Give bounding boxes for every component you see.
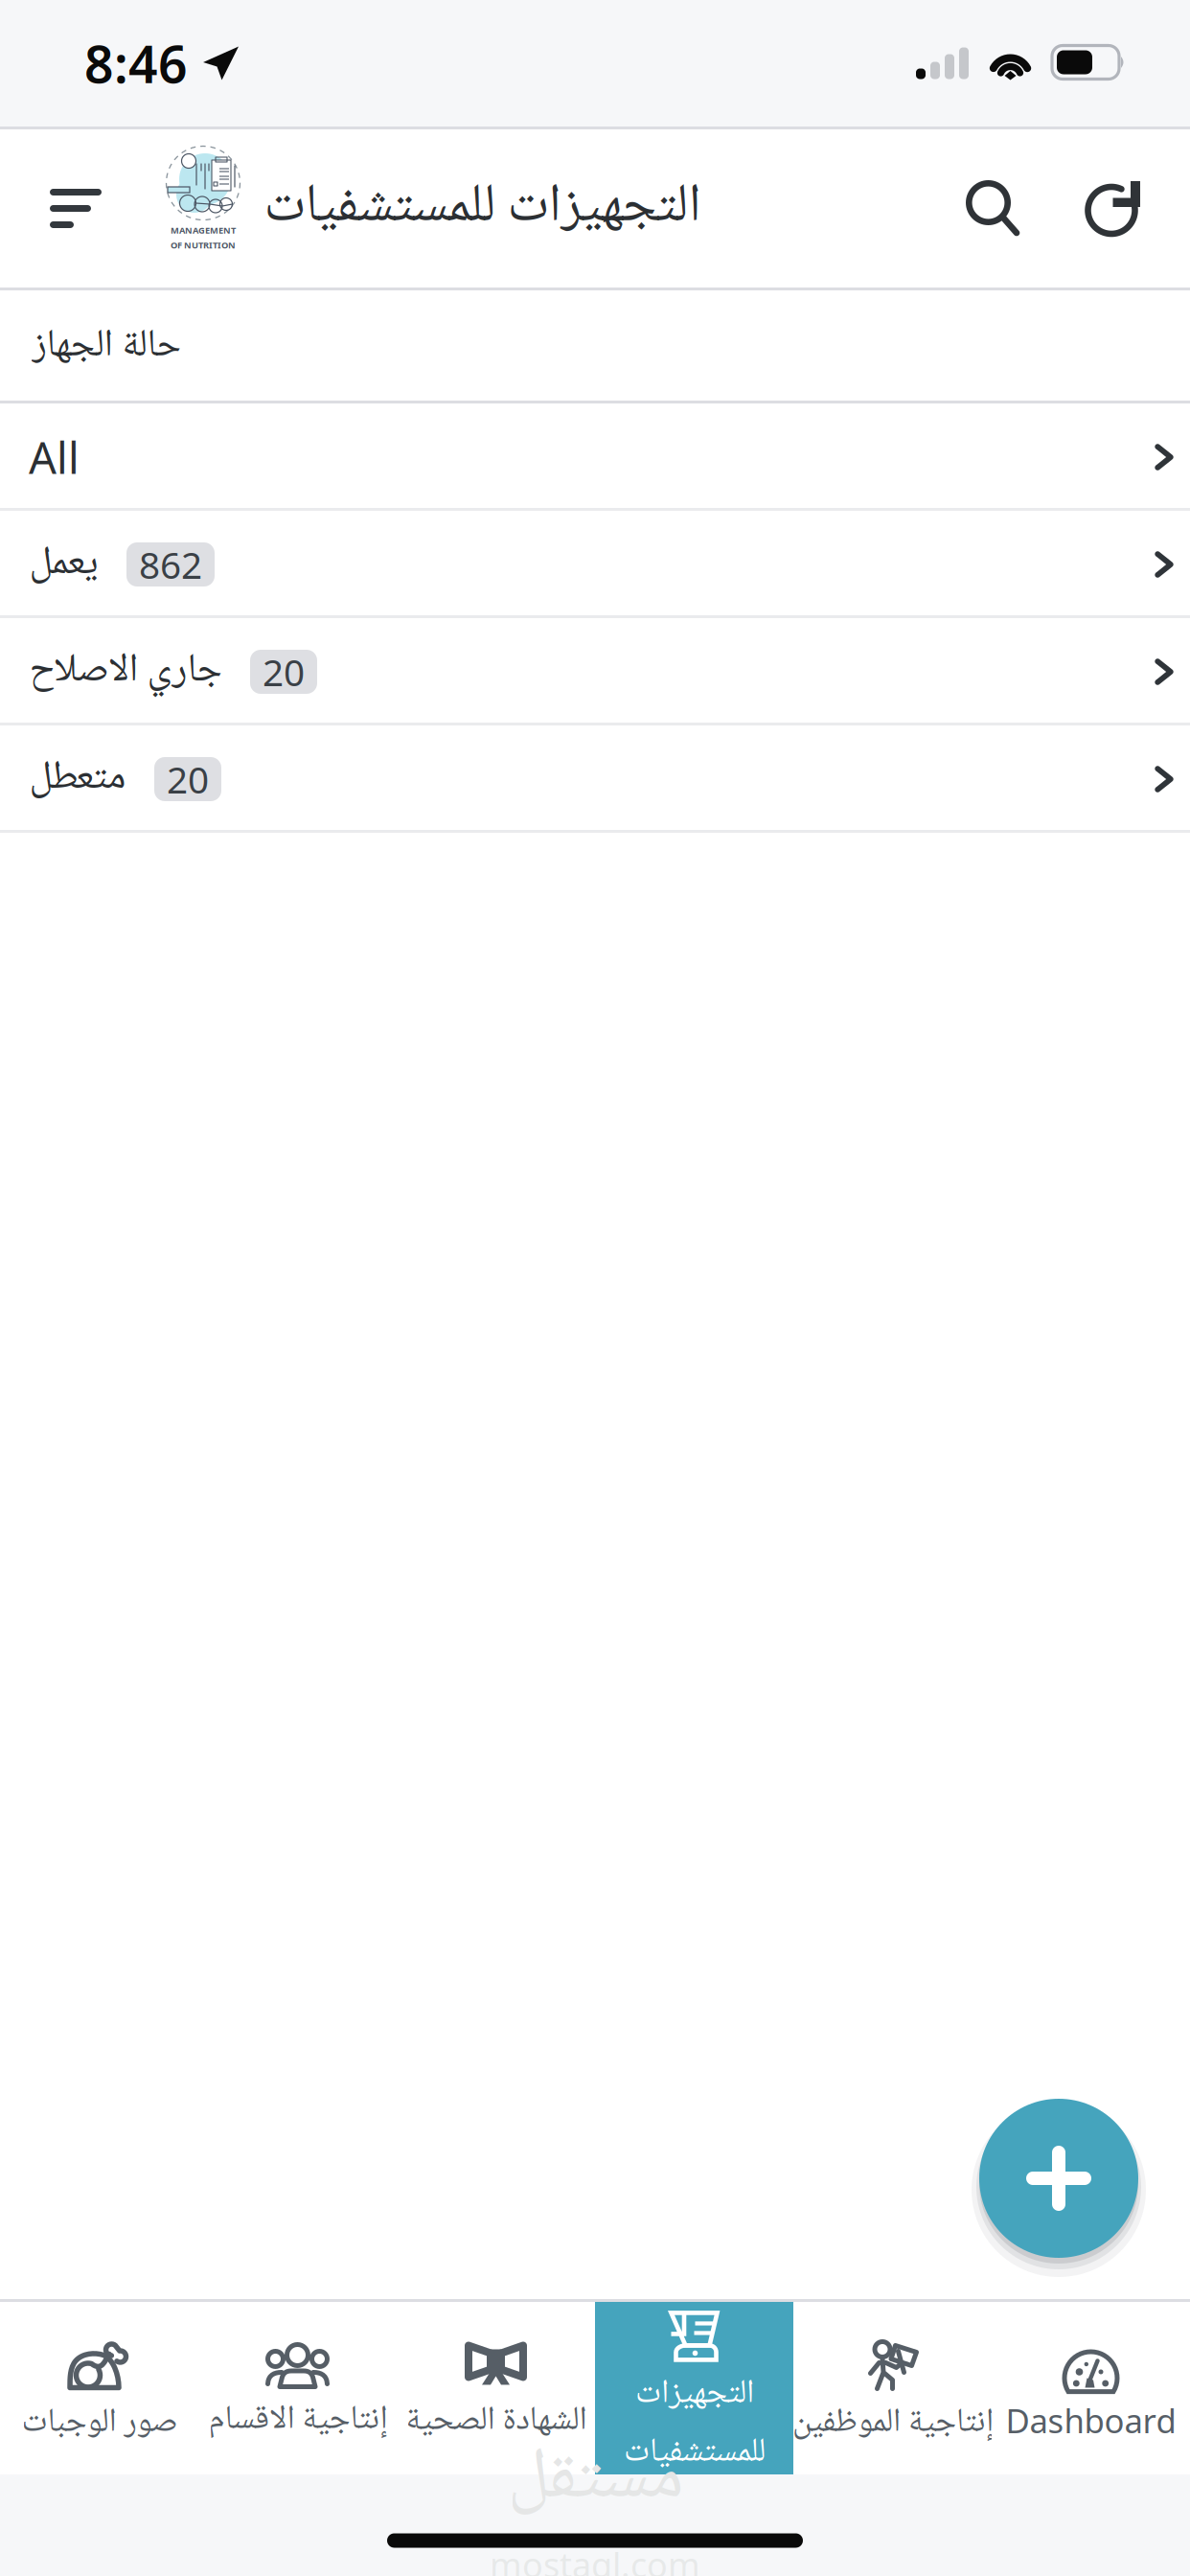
button[interactable]: All	[0, 403, 1190, 511]
button[interactable]: Refresh	[1085, 129, 1141, 287]
staticText: 20	[263, 647, 305, 696]
staticText: إنتاجية الموظفين	[792, 2395, 993, 2452]
staticText: متعطل	[29, 745, 126, 813]
staticText: للمستشفيات	[623, 2425, 765, 2482]
staticText: Dashboard	[1006, 2398, 1176, 2442]
staticText: الشهادة الصحية	[405, 2393, 586, 2450]
staticText: مستقل	[507, 2420, 683, 2542]
button[interactable]: Menu	[0, 129, 102, 287]
button[interactable]: Search	[966, 129, 1019, 287]
button[interactable]: جاري الاصلاح	[0, 618, 1190, 725]
staticText: يعمل	[29, 531, 98, 598]
staticText: حالة الجهاز	[32, 314, 180, 379]
button[interactable]: إنتاجية الاقسام	[198, 2302, 397, 2474]
button[interactable]: الشهادة الصحية	[397, 2302, 595, 2474]
staticText: التجهيزات	[635, 2367, 754, 2423]
button[interactable]: إنتاجية الموظفين	[793, 2302, 992, 2474]
staticText: OF NUTRITION	[171, 239, 236, 251]
button[interactable]: صور الوجبات	[0, 2302, 198, 2474]
staticText: صور الوجبات	[21, 2395, 177, 2452]
staticText: 20	[167, 754, 209, 804]
button[interactable]: متعطل	[0, 725, 1190, 833]
staticText: جاري الاصلاح	[29, 638, 221, 706]
button[interactable]: يعمل	[0, 511, 1190, 618]
staticText: MANAGEMENT	[171, 224, 236, 236]
staticText: إنتاجية الاقسام	[208, 2392, 387, 2449]
staticText: 862	[139, 540, 202, 589]
staticText: 8:46	[84, 29, 188, 97]
staticText: mostaql.com	[490, 2542, 700, 2576]
button[interactable]: Dashboard	[992, 2302, 1190, 2474]
button[interactable]: التجهيزات للمستشفيات	[595, 2302, 793, 2474]
staticText: All	[29, 428, 80, 486]
button[interactable]: Add	[968, 2087, 1150, 2269]
staticText: التجهيزات للمستشفيات	[263, 163, 700, 254]
